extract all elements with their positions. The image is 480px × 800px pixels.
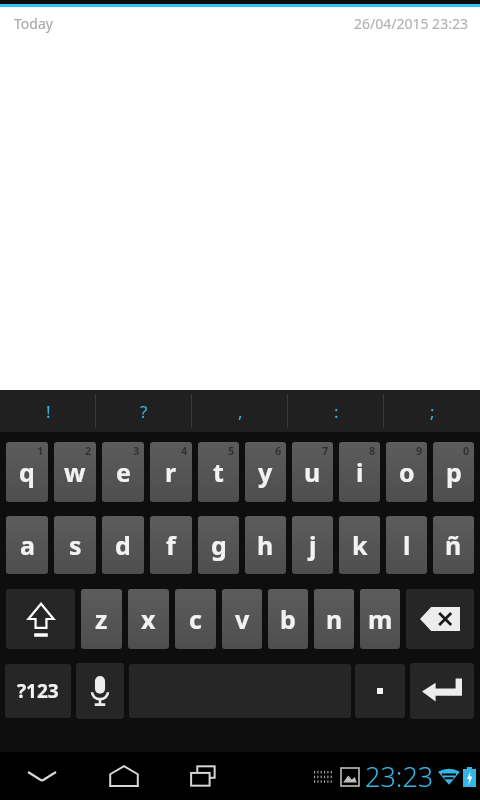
button[interactable]: o xyxy=(386,442,427,502)
staticText: l xyxy=(403,528,411,562)
button[interactable]: k xyxy=(339,516,380,574)
staticText: 7 xyxy=(322,443,329,458)
staticText: h xyxy=(257,528,274,562)
button[interactable]: i xyxy=(339,442,380,502)
button[interactable]: n xyxy=(314,589,354,649)
staticText: ! xyxy=(46,400,51,423)
staticText: t xyxy=(213,455,224,489)
button[interactable]: Backspace xyxy=(406,589,474,649)
staticText: x xyxy=(141,602,156,636)
staticText: 3 xyxy=(133,443,140,458)
staticText: 4 xyxy=(181,443,188,458)
button[interactable]: c xyxy=(175,589,216,649)
button[interactable]: y xyxy=(245,442,286,502)
staticText: u xyxy=(304,455,321,489)
button[interactable]: Hide keyboard xyxy=(0,752,84,800)
button[interactable]: d xyxy=(102,516,144,574)
button[interactable]: j xyxy=(292,516,333,574)
button[interactable]: r xyxy=(150,442,192,502)
staticText: b xyxy=(280,602,296,636)
staticText: 5 xyxy=(228,443,235,458)
button[interactable]: ? xyxy=(96,390,192,432)
staticText: s xyxy=(69,528,82,562)
staticText: r xyxy=(165,455,177,489)
staticText: c xyxy=(189,602,202,636)
staticText: d xyxy=(115,528,131,562)
button[interactable]: m xyxy=(360,589,400,649)
button[interactable]: x xyxy=(128,589,169,649)
button[interactable]: Shift xyxy=(6,589,75,649)
staticText: ? xyxy=(140,400,148,423)
staticText: e xyxy=(116,455,131,489)
staticText: 8 xyxy=(369,443,376,458)
button[interactable]: , xyxy=(192,390,288,432)
staticText: q xyxy=(19,455,35,489)
button[interactable]: ñ xyxy=(433,516,474,574)
staticText: j xyxy=(309,528,317,562)
staticText: ñ xyxy=(445,528,462,562)
button[interactable] xyxy=(355,664,405,718)
staticText: p xyxy=(446,455,462,489)
staticText: : xyxy=(334,400,339,423)
button[interactable]: Enter xyxy=(410,663,474,719)
button[interactable]: ! xyxy=(0,390,96,432)
staticText: w xyxy=(64,455,86,489)
button[interactable]: ?123 xyxy=(5,664,71,718)
staticText: 0 xyxy=(463,443,470,458)
staticText: o xyxy=(399,455,415,489)
staticText: z xyxy=(95,602,108,636)
staticText: 1 xyxy=(37,443,44,458)
button[interactable]: : xyxy=(288,390,384,432)
staticText: f xyxy=(166,528,176,562)
staticText: k xyxy=(352,528,368,562)
button[interactable]: e xyxy=(102,442,144,502)
button[interactable]: l xyxy=(386,516,427,574)
staticText: ?123 xyxy=(17,678,59,704)
staticText: g xyxy=(211,528,227,562)
button[interactable]: q xyxy=(6,442,48,502)
button[interactable]: g xyxy=(198,516,239,574)
button[interactable]: h xyxy=(245,516,286,574)
button[interactable]: u xyxy=(292,442,333,502)
staticText: a xyxy=(20,528,35,562)
staticText: , xyxy=(238,400,243,423)
staticText: 23:23 xyxy=(365,758,434,795)
staticText: m xyxy=(368,602,393,636)
staticText: Today xyxy=(14,14,53,33)
button[interactable]: z xyxy=(81,589,122,649)
staticText: v xyxy=(235,602,250,636)
button[interactable]: Recents xyxy=(164,752,244,800)
button[interactable]: Home xyxy=(84,752,164,800)
staticText: 2 xyxy=(85,443,92,458)
staticText: y xyxy=(258,455,273,489)
button[interactable]: f xyxy=(150,516,192,574)
button[interactable]: p xyxy=(433,442,474,502)
button[interactable]: ; xyxy=(384,390,480,432)
button[interactable]: a xyxy=(6,516,48,574)
staticText: ; xyxy=(430,400,435,423)
button[interactable]: b xyxy=(268,589,308,649)
staticText: i xyxy=(356,455,364,489)
button[interactable]: w xyxy=(54,442,96,502)
staticText: 6 xyxy=(275,443,282,458)
staticText: 9 xyxy=(416,443,423,458)
staticText: n xyxy=(326,602,343,636)
button[interactable]: Voice input xyxy=(76,663,124,719)
staticText: 26/04/2015 23:23 xyxy=(354,14,468,33)
button[interactable]: t xyxy=(198,442,239,502)
button[interactable]: v xyxy=(222,589,262,649)
button[interactable]: s xyxy=(54,516,96,574)
